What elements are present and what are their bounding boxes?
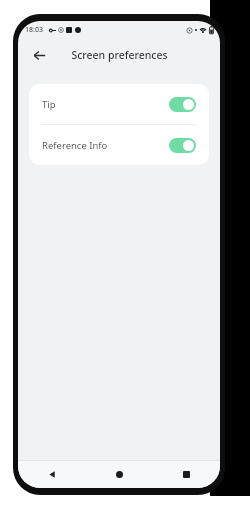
staticText: 18:03 (25, 25, 43, 35)
button[interactable]: Recents (153, 461, 220, 488)
button[interactable]: Back (18, 461, 86, 488)
staticText: Screen preferences (71, 48, 168, 62)
button[interactable]: Home (86, 461, 153, 488)
button[interactable]: Tip (29, 84, 209, 124)
button[interactable]: Toggle Tip (169, 97, 196, 112)
button[interactable]: Toggle Reference Info (169, 138, 196, 153)
staticText: Reference Info (42, 139, 169, 152)
button[interactable]: Reference Info (29, 125, 209, 165)
button[interactable]: Back (28, 44, 50, 66)
staticText: Tip (42, 98, 169, 111)
